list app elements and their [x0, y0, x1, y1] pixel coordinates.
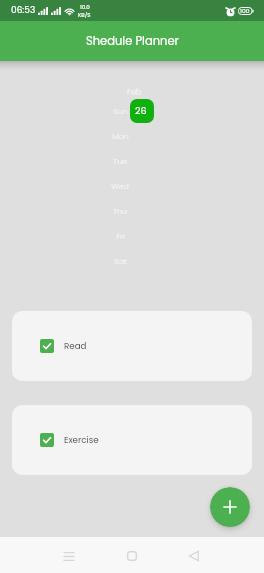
button[interactable]: Read	[12, 311, 252, 381]
staticText: 100	[240, 7, 250, 15]
staticText: Fri	[116, 231, 125, 242]
button[interactable]: Add	[210, 487, 250, 527]
button[interactable]: 26	[130, 99, 154, 123]
staticText: Wed	[111, 181, 129, 192]
button[interactable]: Home	[117, 542, 147, 570]
button[interactable]: Back	[179, 542, 209, 570]
staticText: Mon	[112, 131, 129, 142]
staticText: Thu	[113, 206, 127, 217]
staticText: 06:53	[11, 4, 36, 17]
button[interactable]: Recent apps	[54, 542, 84, 570]
staticText: Tue	[113, 156, 127, 167]
staticText: KB/S	[78, 11, 91, 19]
staticText: 10.0	[80, 3, 90, 11]
staticText: Read	[64, 340, 87, 352]
staticText: 26	[135, 104, 147, 117]
staticText: Shedule Planner	[86, 33, 179, 49]
button[interactable]: Exercise	[12, 405, 252, 475]
staticText: Exercise	[64, 434, 99, 446]
staticText: Sun	[113, 106, 128, 117]
staticText: Sat	[114, 256, 127, 267]
staticText: Feb	[127, 87, 142, 98]
